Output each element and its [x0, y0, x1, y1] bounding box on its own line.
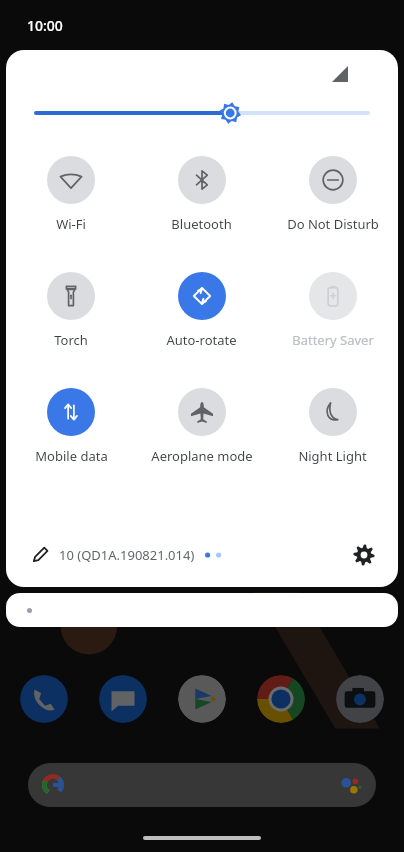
button[interactable]: CHROME: [257, 675, 305, 723]
button[interactable]: MESSAGES: [99, 675, 147, 723]
button[interactable]: Do Not Disturb: [267, 156, 398, 233]
button[interactable]: Mobile data: [6, 388, 136, 465]
button[interactable]: PHONE: [20, 675, 68, 723]
staticText: Torch: [54, 331, 88, 349]
staticText: Night Light: [298, 447, 367, 465]
button[interactable]: Search: [28, 763, 376, 807]
staticText: Wi-Fi: [56, 215, 86, 233]
staticText: Auto-rotate: [166, 331, 237, 349]
button[interactable]: Night Light: [267, 388, 398, 465]
staticText: Bluetooth: [171, 215, 232, 233]
staticText: Mobile data: [35, 447, 108, 465]
button[interactable]: Edit tiles: [22, 538, 56, 572]
button[interactable]: CAMERA: [336, 675, 384, 723]
button[interactable]: Torch: [6, 272, 136, 349]
button[interactable]: Bluetooth: [136, 156, 267, 233]
staticText: Do Not Disturb: [287, 215, 379, 233]
staticText: Aeroplane mode: [151, 447, 253, 465]
button[interactable]: Settings: [346, 537, 382, 573]
staticText: 10:00: [27, 16, 63, 35]
button[interactable]: Wi-Fi: [6, 156, 136, 233]
staticText: Battery Saver: [292, 331, 374, 349]
button[interactable]: [6, 593, 398, 627]
button[interactable]: Auto-rotate: [136, 272, 267, 349]
button[interactable]: Brightness: [6, 98, 398, 128]
staticText: 10 (QD1A.190821.014): [59, 546, 195, 564]
button[interactable]: PLAY: [178, 675, 226, 723]
button[interactable]: Battery Saver: [267, 272, 398, 349]
button[interactable]: Aeroplane mode: [136, 388, 267, 465]
